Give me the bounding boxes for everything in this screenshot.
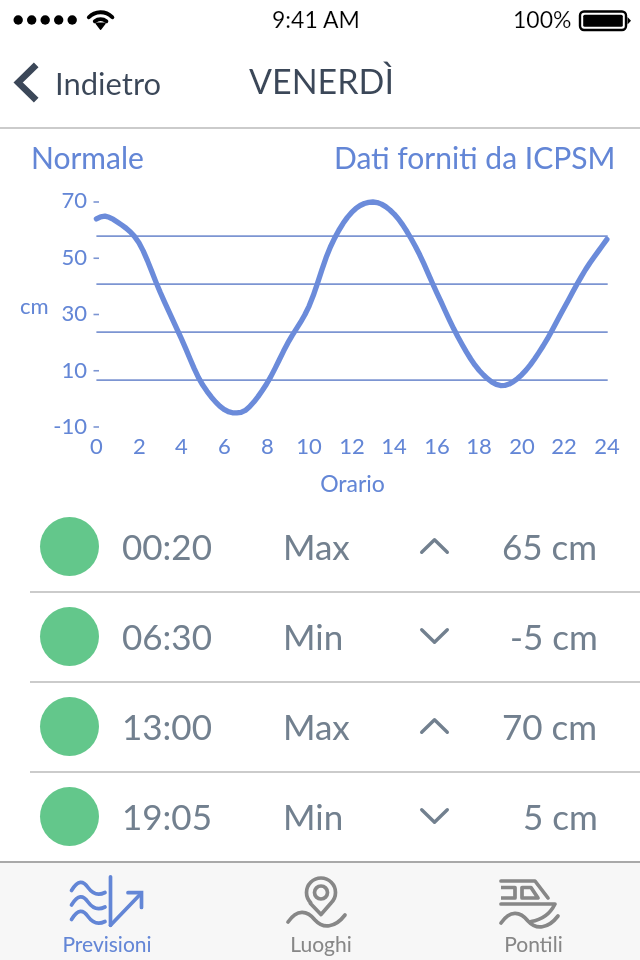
staticText: VENERDÌ xyxy=(249,60,394,101)
staticText: Normale xyxy=(31,139,144,175)
staticText: Max xyxy=(283,705,350,747)
staticText: 50 xyxy=(61,243,87,269)
staticText: 70 cm xyxy=(502,705,598,747)
staticText: 19:05 xyxy=(122,795,212,837)
button[interactable]: Pontili xyxy=(427,863,640,960)
staticText: Indietro xyxy=(55,64,162,101)
staticText: 9:41 AM xyxy=(272,5,360,33)
staticText: 18 xyxy=(466,432,492,458)
staticText: Pontili xyxy=(504,931,563,956)
staticText: 65 cm xyxy=(502,525,598,567)
staticText: 6 xyxy=(218,432,231,458)
staticText: 12 xyxy=(339,432,365,458)
button[interactable]: Luoghi xyxy=(214,863,427,960)
staticText: 22 xyxy=(551,432,577,458)
staticText: 20 xyxy=(509,432,535,458)
staticText: Luoghi xyxy=(290,931,352,956)
staticText: Orario xyxy=(320,469,385,497)
staticText: 8 xyxy=(261,432,274,458)
staticText: 00:20 xyxy=(122,525,212,567)
staticText: Previsioni xyxy=(62,931,152,956)
staticText: 0 xyxy=(90,432,103,458)
button[interactable]: 13:00 xyxy=(0,681,640,771)
staticText: Min xyxy=(283,615,344,657)
button[interactable]: 00:20 xyxy=(0,501,640,591)
staticText: 16 xyxy=(424,432,450,458)
staticText: 4 xyxy=(175,432,188,458)
staticText: 06:30 xyxy=(122,615,212,657)
staticText: 10 xyxy=(61,356,87,382)
staticText: 5 cm xyxy=(523,795,598,837)
staticText: -5 cm xyxy=(510,615,598,657)
staticText: cm xyxy=(20,292,49,318)
staticText: 10 xyxy=(296,432,322,458)
staticText: 14 xyxy=(381,432,407,458)
staticText: 24 xyxy=(594,432,620,458)
staticText: Dati forniti da ICPSM xyxy=(334,139,616,175)
staticText: 30 xyxy=(61,299,87,325)
staticText: -10 xyxy=(53,412,87,438)
button[interactable]: Previsioni xyxy=(0,863,214,960)
button[interactable]: 06:30 xyxy=(0,591,640,681)
button[interactable]: 19:05 xyxy=(0,771,640,861)
button[interactable]: Indietro xyxy=(0,58,172,107)
staticText: 70 xyxy=(61,186,87,212)
staticText: Max xyxy=(283,525,350,567)
staticText: Min xyxy=(283,795,344,837)
staticText: 13:00 xyxy=(122,705,212,747)
staticText: 100% xyxy=(513,5,572,33)
staticText: 2 xyxy=(133,432,146,458)
